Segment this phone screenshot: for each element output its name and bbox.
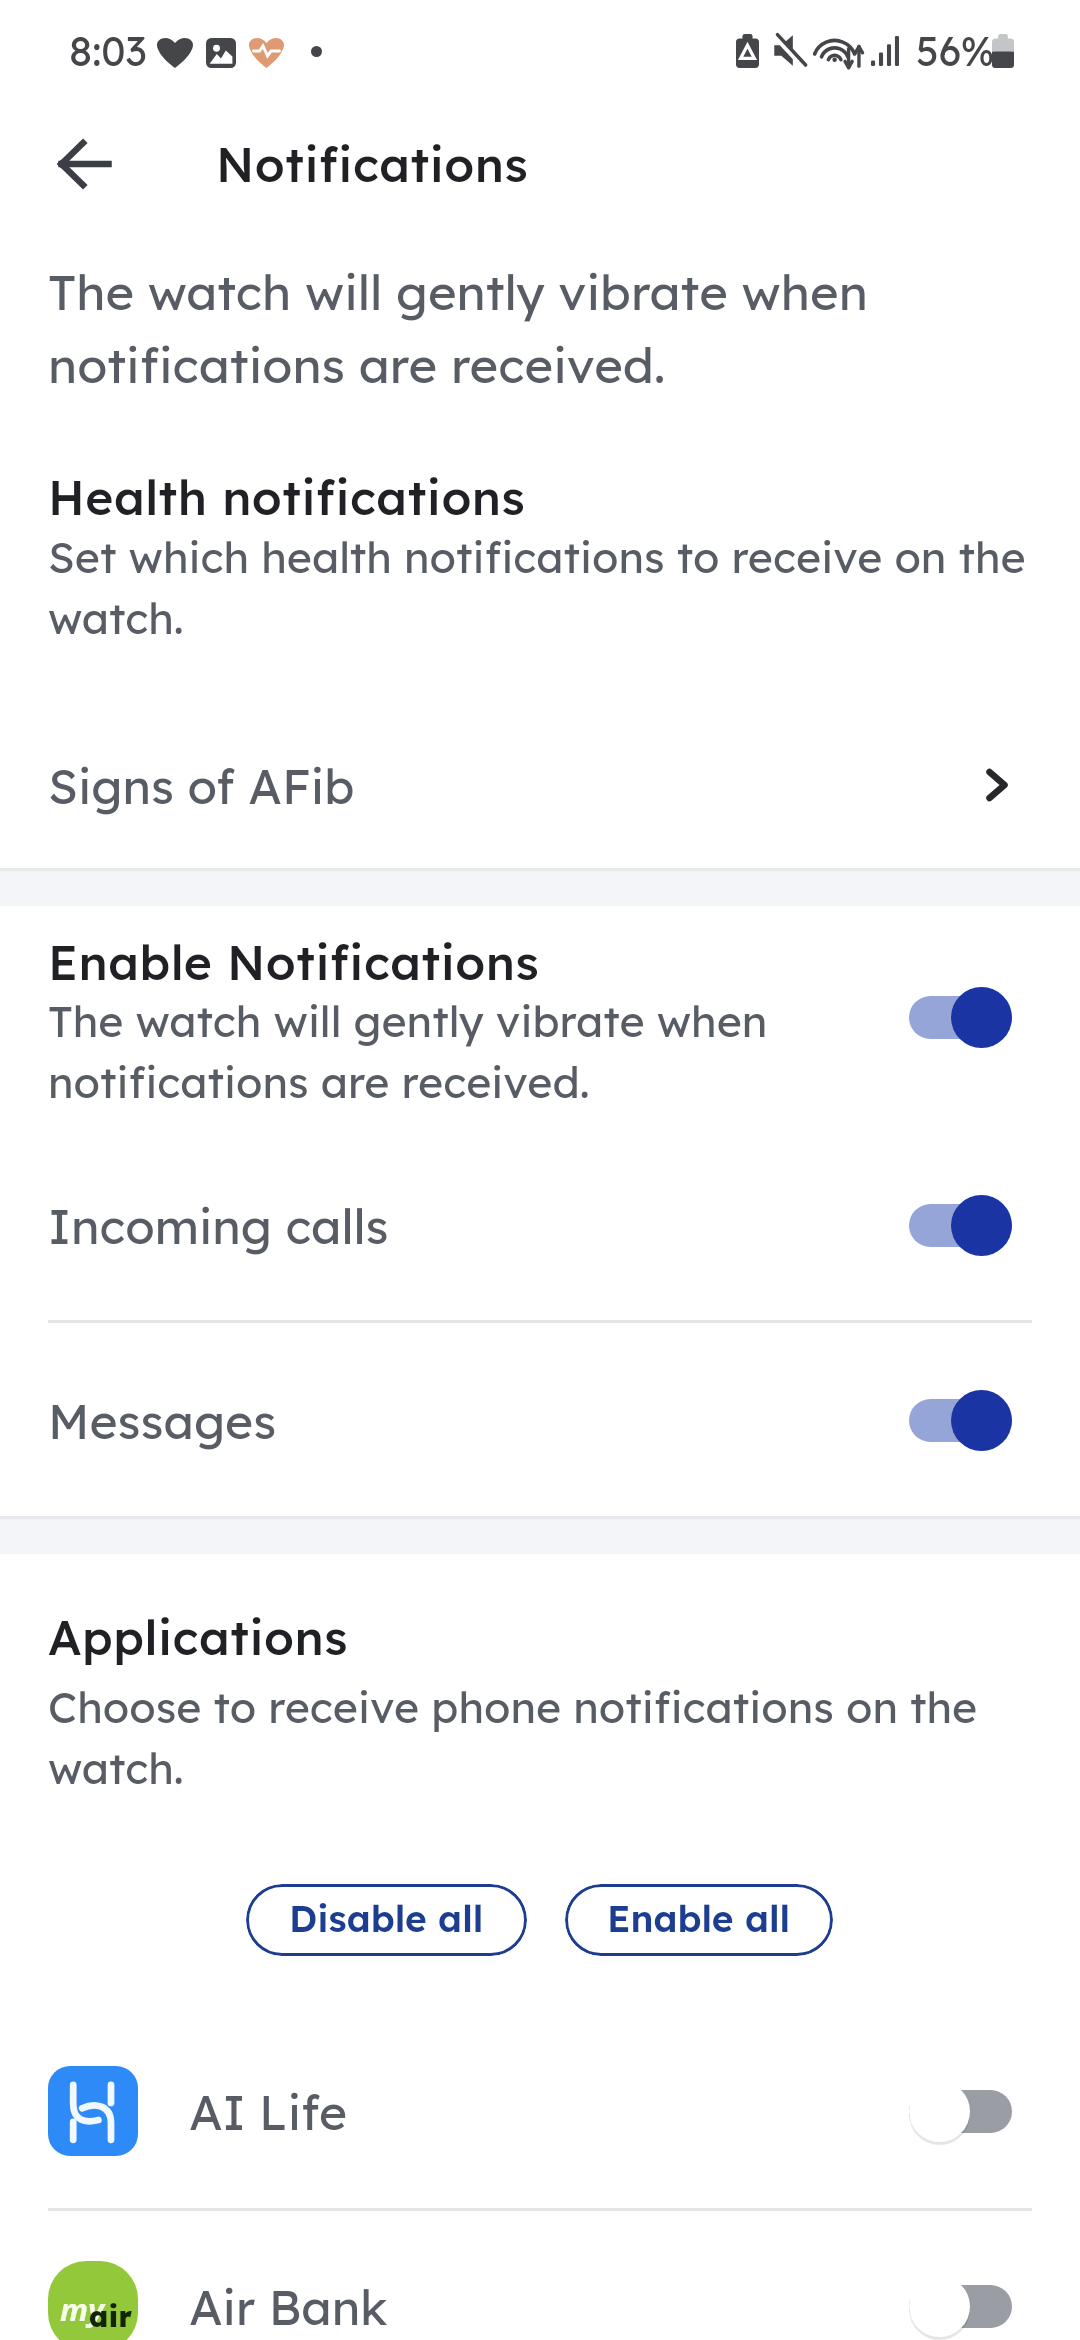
staticText: 8:03 bbox=[69, 29, 147, 75]
staticText: Disable all bbox=[289, 1900, 484, 1940]
button[interactable]: Enable Notifications toggle bbox=[893, 970, 1028, 1064]
staticText: Enable Notifications bbox=[48, 932, 540, 992]
staticText: Health notifications bbox=[48, 467, 526, 527]
staticText: Notifications bbox=[216, 137, 529, 193]
staticText: The watch will gently vibrate when notif… bbox=[48, 988, 768, 1110]
button[interactable]: Disable all bbox=[246, 1884, 527, 1956]
button[interactable]: Enable all bbox=[565, 1884, 833, 1956]
staticText: 56% bbox=[916, 29, 995, 75]
staticText: Signs of AFib bbox=[48, 755, 355, 816]
staticText: Incoming calls bbox=[48, 1195, 389, 1256]
button[interactable]: my bbox=[0, 2237, 1080, 2340]
staticText: Air Bank bbox=[189, 2276, 388, 2337]
staticText: Enable all bbox=[607, 1900, 791, 1940]
button[interactable]: Signs of AFib bbox=[0, 735, 1080, 835]
staticText: The watch will gently vibrate when notif… bbox=[48, 252, 868, 398]
staticText: my bbox=[60, 2288, 105, 2330]
staticText: Applications bbox=[48, 1607, 348, 1667]
staticText: Set which health notifications to receiv… bbox=[48, 524, 1026, 646]
button[interactable]: Messages bbox=[0, 1370, 1080, 1470]
staticText: AI Life bbox=[189, 2081, 348, 2142]
button[interactable]: Incoming calls bbox=[0, 1175, 1080, 1275]
staticText: air bbox=[89, 2298, 133, 2334]
button[interactable]: AI Life bbox=[0, 2042, 1080, 2180]
button[interactable]: Back bbox=[35, 117, 131, 213]
staticText: Choose to receive phone notifications on… bbox=[48, 1674, 978, 1796]
staticText: Messages bbox=[48, 1390, 277, 1451]
